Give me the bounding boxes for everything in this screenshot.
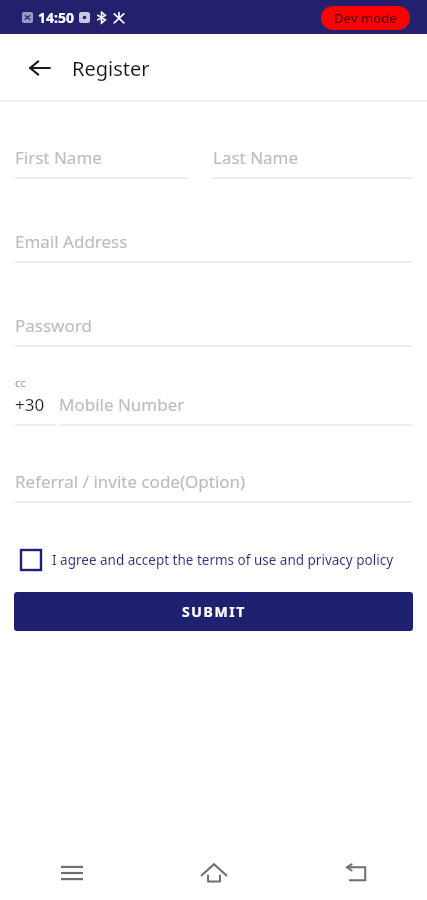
staticText: Referral / invite code(Option) xyxy=(15,470,246,493)
staticText: Password xyxy=(15,314,92,337)
button[interactable]: Last Name xyxy=(213,146,413,179)
staticText: cc xyxy=(15,375,26,390)
button[interactable]: Email Address xyxy=(15,230,412,263)
button[interactable]: SUBMIT xyxy=(14,592,413,631)
button[interactable]: Dev mode xyxy=(321,6,410,30)
staticText: Register xyxy=(72,55,150,82)
button[interactable]: +30 xyxy=(15,393,56,426)
button[interactable]: Mobile Number xyxy=(59,393,413,426)
staticText: Last Name xyxy=(213,146,299,169)
button[interactable]: First Name xyxy=(15,146,187,179)
button[interactable]: I agree and accept the terms of use and … xyxy=(18,547,413,573)
staticText: First Name xyxy=(15,146,102,169)
staticText: Email Address xyxy=(15,230,128,253)
staticText: Dev mode xyxy=(334,9,397,27)
button[interactable]: Referral / invite code(Option) xyxy=(15,470,412,503)
button[interactable]: Home xyxy=(143,849,285,897)
staticText: SUBMIT xyxy=(182,602,246,621)
button[interactable]: Password xyxy=(15,314,412,347)
staticText: Mobile Number xyxy=(59,393,185,416)
staticText: I agree and accept the terms of use and … xyxy=(52,551,394,569)
staticText: 14:50 xyxy=(38,8,74,27)
button[interactable]: Back xyxy=(285,849,427,897)
staticText: +30 xyxy=(15,393,45,416)
button[interactable]: Back xyxy=(18,46,62,90)
button[interactable]: Recent apps xyxy=(0,849,143,897)
